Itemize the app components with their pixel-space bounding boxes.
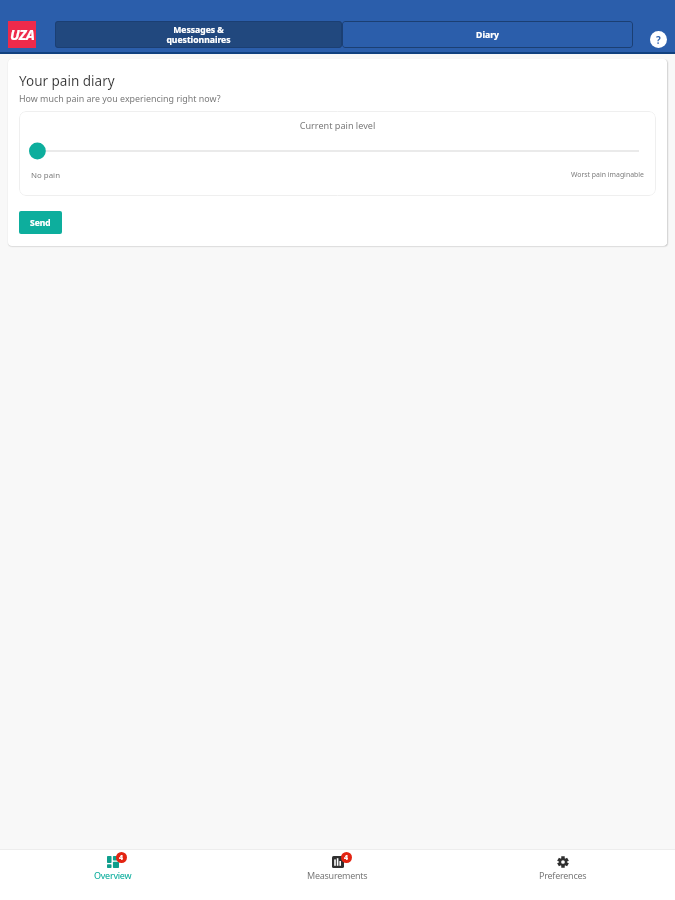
button[interactable]: 4	[225, 850, 450, 900]
staticText: UZA	[10, 25, 35, 44]
button[interactable]: Send	[19, 211, 62, 234]
button[interactable]: Diary	[342, 21, 633, 48]
staticText: 4	[344, 853, 349, 863]
staticText: 4	[119, 853, 124, 863]
staticText: No pain	[31, 170, 61, 181]
staticText: How much pain are you experiencing right…	[19, 92, 221, 104]
staticText: Diary	[476, 29, 499, 41]
staticText: Worst pain imaginable	[571, 170, 644, 179]
staticText: Send	[30, 217, 51, 229]
button[interactable]: 4	[0, 850, 225, 900]
button[interactable]: Messages & questionnaires	[55, 21, 342, 48]
staticText: Messages & questionnaires	[166, 24, 231, 46]
staticText: Measurements	[307, 869, 368, 881]
button[interactable]: Help	[650, 31, 667, 48]
staticText: Your pain diary	[19, 72, 115, 90]
button[interactable]: Preferences	[450, 850, 675, 900]
button[interactable]: Pain level slider	[19, 141, 656, 161]
staticText: Preferences	[539, 869, 587, 881]
button[interactable]: UZA home	[8, 21, 36, 48]
staticText: Overview	[94, 869, 132, 881]
staticText: ?	[656, 33, 661, 47]
staticText: Current pain level	[19, 119, 656, 131]
